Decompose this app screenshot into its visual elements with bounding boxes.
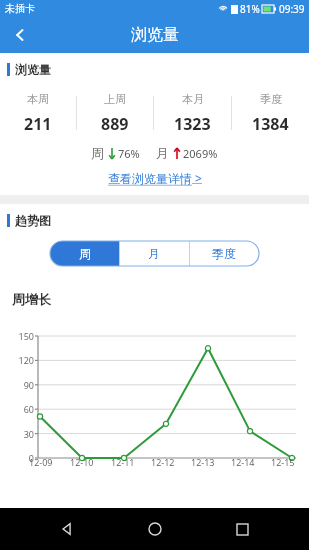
- staticText: 211: [24, 113, 52, 135]
- staticText: 查看浏览量详情 >: [108, 170, 202, 186]
- staticText: 0: [28, 452, 34, 464]
- button[interactable]: 月: [119, 241, 189, 266]
- staticText: 12-12: [151, 456, 175, 468]
- staticText: 12-11: [111, 456, 135, 468]
- staticText: 上周: [104, 92, 126, 106]
- staticText: 09:39: [279, 2, 305, 16]
- staticText: 未插卡: [5, 2, 35, 15]
- staticText: 90: [23, 379, 34, 391]
- staticText: 季度: [212, 246, 236, 261]
- staticText: 趋势图: [15, 213, 51, 228]
- button[interactable]: Back: [0, 17, 40, 53]
- staticText: 周增长: [12, 291, 51, 307]
- staticText: 12-09: [29, 456, 53, 468]
- staticText: 本周: [27, 92, 49, 106]
- staticText: 周: [91, 145, 104, 161]
- button[interactable]: 周: [50, 241, 119, 266]
- button[interactable]: Recents: [222, 509, 262, 549]
- staticText: 1323: [174, 113, 211, 135]
- staticText: 30: [23, 428, 34, 440]
- staticText: 12-15: [271, 456, 295, 468]
- staticText: 889: [101, 113, 129, 135]
- staticText: 月: [156, 145, 169, 161]
- button[interactable]: 季度: [189, 241, 259, 266]
- staticText: 季度: [260, 92, 282, 106]
- staticText: 1384: [252, 113, 289, 135]
- button[interactable]: 查看浏览量详情 >: [0, 170, 309, 186]
- staticText: 60: [23, 403, 34, 415]
- button[interactable]: Back: [47, 509, 87, 549]
- staticText: 月: [148, 246, 160, 261]
- staticText: 12-13: [191, 456, 215, 468]
- staticText: 150: [18, 330, 34, 342]
- staticText: 12-10: [70, 456, 94, 468]
- staticText: 76%: [118, 146, 140, 161]
- staticText: 本月: [182, 92, 204, 106]
- staticText: 120: [18, 354, 34, 366]
- staticText: 周: [79, 246, 91, 261]
- button[interactable]: Home: [135, 509, 175, 549]
- staticText: 81%: [240, 2, 260, 16]
- staticText: 浏览量: [15, 62, 51, 77]
- staticText: 2069%: [183, 146, 218, 161]
- staticText: 12-14: [231, 456, 255, 468]
- staticText: 浏览量: [131, 25, 179, 45]
